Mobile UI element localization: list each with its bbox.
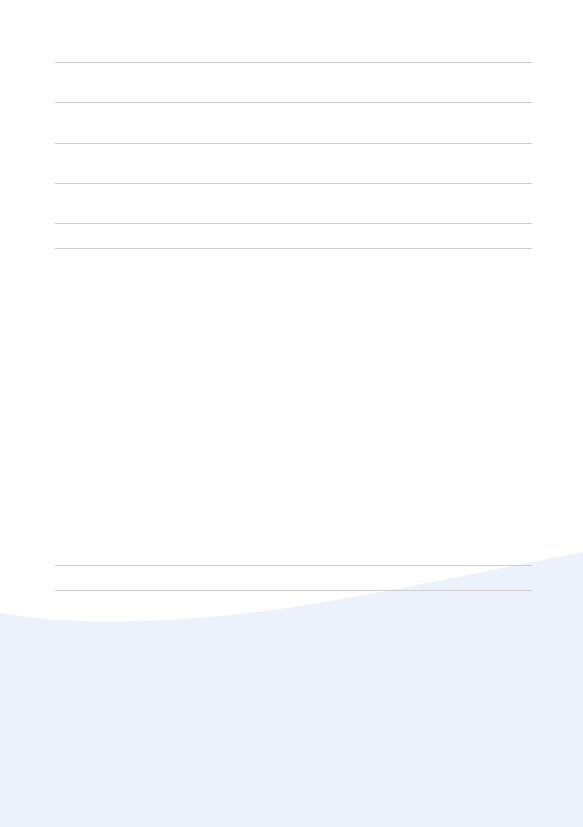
- button[interactable]: Entry 5: [0, 183, 583, 223]
- button[interactable]: Signature field: [0, 565, 583, 590]
- button[interactable]: Entry 4: [0, 143, 583, 183]
- button[interactable]: Entry 2: [0, 62, 583, 102]
- button[interactable]: Entry 3: [0, 102, 583, 143]
- button[interactable]: Entry 6: [0, 223, 583, 248]
- button[interactable]: Date field: [0, 590, 583, 614]
